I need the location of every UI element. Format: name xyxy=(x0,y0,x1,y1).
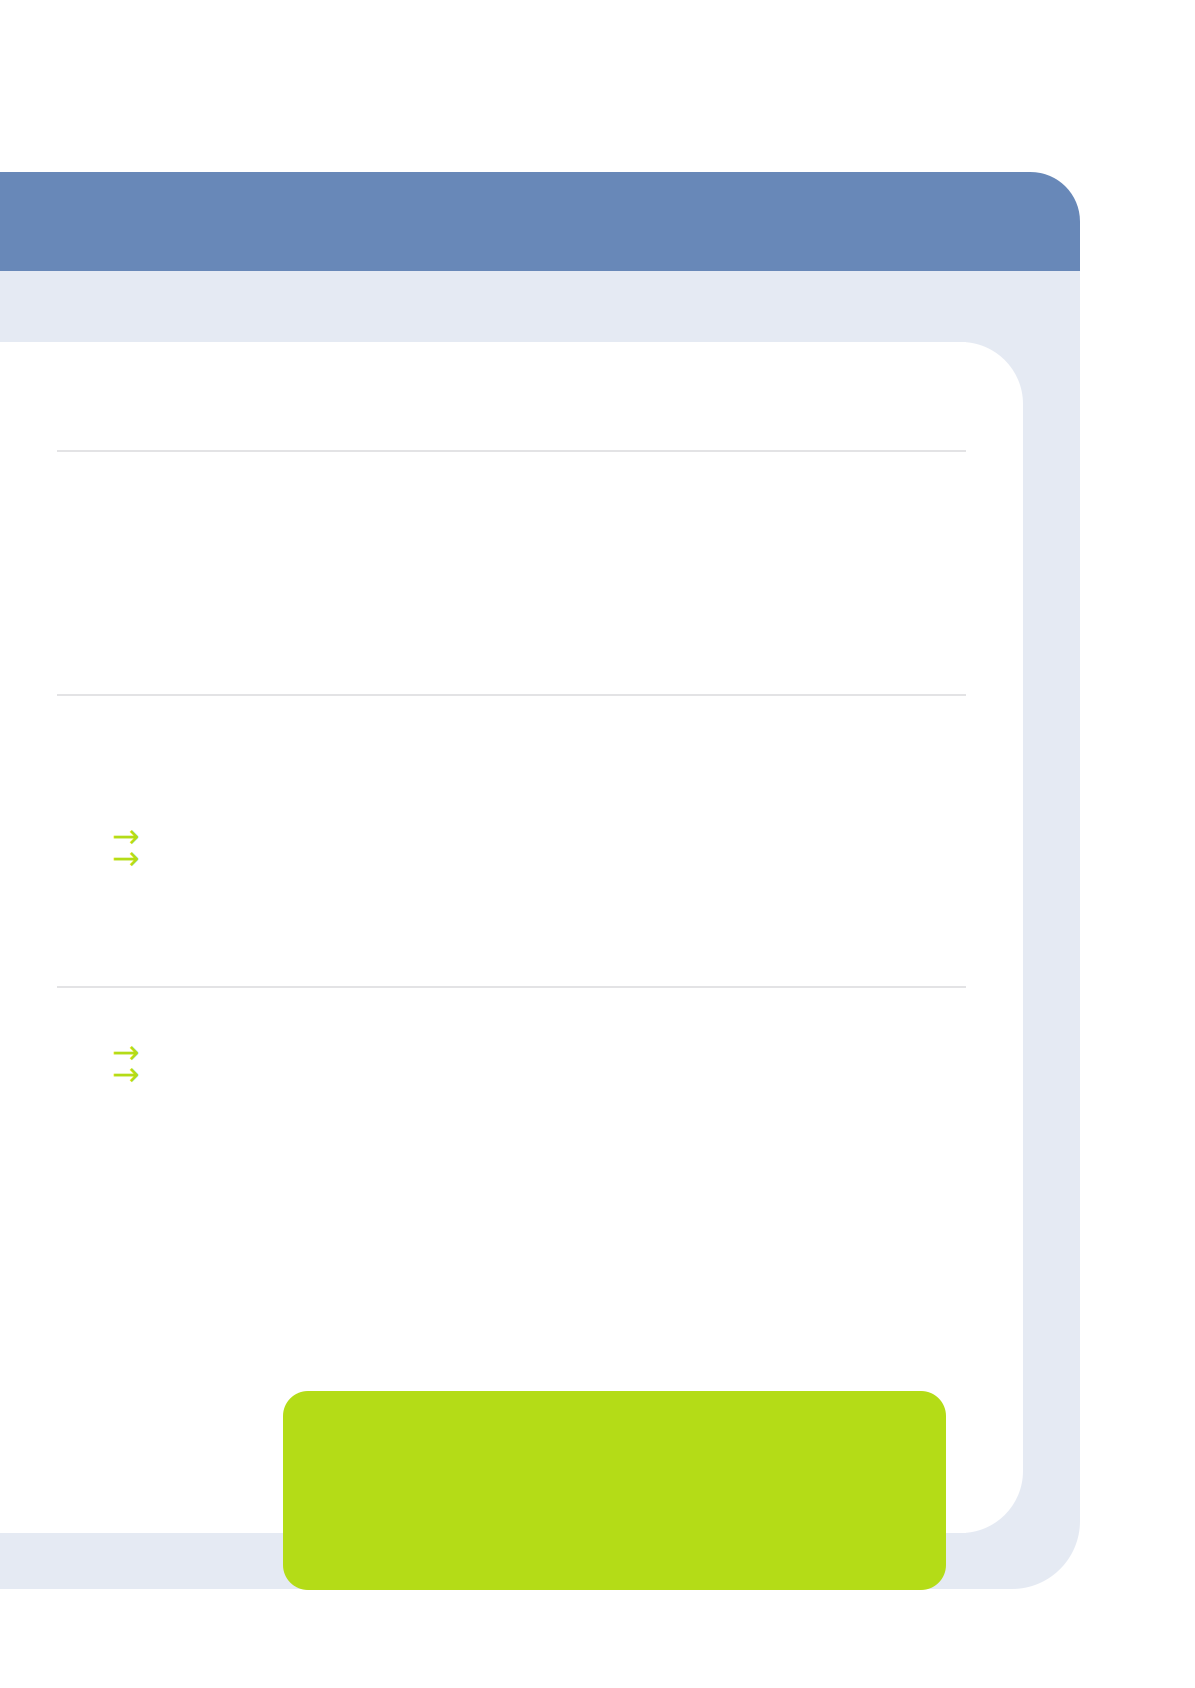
staticText: → xyxy=(112,1033,140,1071)
staticText: → xyxy=(112,817,140,855)
staticText: → xyxy=(112,1055,140,1093)
button[interactable]: Included xyxy=(57,696,966,986)
button[interactable]: Also included xyxy=(57,988,966,1533)
staticText: → xyxy=(112,839,140,877)
button[interactable]: Continue xyxy=(283,1391,946,1590)
